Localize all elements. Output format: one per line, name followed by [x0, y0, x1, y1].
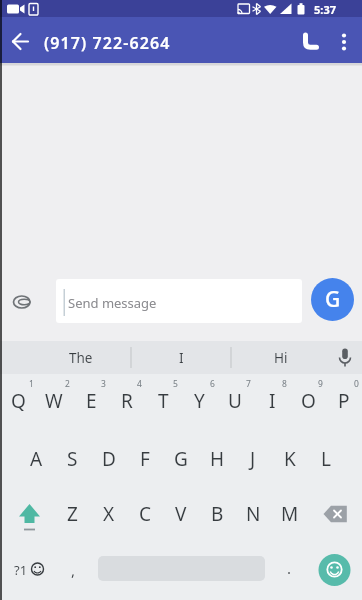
staticText: K	[284, 446, 296, 472]
staticText: 0	[354, 378, 359, 390]
staticText: B	[211, 501, 224, 527]
button[interactable]	[56, 279, 302, 323]
staticText: X	[103, 501, 115, 527]
staticText: E	[86, 388, 97, 414]
staticText: I	[179, 349, 184, 367]
staticText: 1	[29, 378, 34, 390]
button[interactable]: B	[199, 494, 235, 534]
staticText: Hi	[274, 349, 288, 367]
staticText: J	[250, 446, 256, 472]
button[interactable]: S	[54, 439, 90, 479]
staticText: Q	[11, 388, 26, 414]
button[interactable]: W	[36, 381, 72, 421]
staticText: 9	[318, 378, 323, 390]
button[interactable]: P	[326, 381, 362, 421]
button[interactable]: I	[141, 343, 221, 372]
button[interactable]: U	[217, 381, 253, 421]
button[interactable]: .	[271, 548, 307, 588]
staticText: Z	[67, 501, 78, 527]
button[interactable]: Q	[0, 381, 36, 421]
button[interactable]	[315, 496, 355, 534]
button[interactable]: R	[109, 381, 145, 421]
button[interactable]: H	[199, 439, 235, 479]
button[interactable]	[331, 343, 359, 372]
staticText: V	[175, 501, 187, 527]
staticText: D	[102, 446, 116, 472]
staticText: S	[67, 446, 78, 472]
button[interactable]: Hi	[241, 343, 321, 372]
staticText: I	[269, 388, 276, 414]
button[interactable]	[330, 28, 358, 56]
button[interactable]: C	[127, 494, 163, 534]
staticText: 2	[65, 378, 70, 390]
staticText: 7	[246, 378, 251, 390]
staticText: H	[210, 446, 225, 472]
staticText: ,	[71, 560, 76, 580]
staticText: Y	[194, 388, 205, 414]
button[interactable]	[317, 552, 353, 588]
staticText: C	[139, 501, 152, 527]
button[interactable]: V	[163, 494, 199, 534]
button[interactable]: ,	[55, 550, 91, 590]
button[interactable]: M	[272, 494, 308, 534]
staticText: Send message	[68, 294, 157, 312]
button[interactable]	[6, 28, 34, 56]
button[interactable]: I	[254, 381, 290, 421]
staticText: 6	[210, 378, 215, 390]
button[interactable]: T	[145, 381, 181, 421]
staticText: (917) 722-6264	[44, 32, 171, 54]
button[interactable]: X	[91, 494, 127, 534]
staticText: 5:37	[314, 2, 336, 17]
button[interactable]: Y	[181, 381, 217, 421]
staticText: 5	[173, 378, 178, 390]
button[interactable]: The	[41, 343, 121, 372]
staticText: W	[45, 388, 63, 414]
staticText: G	[325, 285, 341, 314]
button[interactable]	[10, 496, 50, 534]
staticText: L	[321, 446, 331, 472]
staticText: R	[121, 388, 133, 414]
staticText: P	[338, 388, 350, 414]
button[interactable]: E	[73, 381, 109, 421]
staticText: N	[246, 501, 261, 527]
button[interactable]	[8, 552, 50, 590]
staticText: 4	[137, 378, 142, 390]
button[interactable]: G	[311, 278, 354, 321]
button[interactable]: J	[235, 439, 271, 479]
button[interactable]: O	[290, 381, 326, 421]
staticText: M	[281, 501, 299, 527]
staticText: The	[69, 349, 93, 367]
staticText: F	[140, 446, 150, 472]
staticText: .	[287, 558, 292, 578]
staticText: U	[228, 388, 242, 414]
button[interactable]: N	[235, 494, 271, 534]
staticText: A	[30, 446, 43, 472]
staticText: G	[174, 446, 188, 472]
staticText: T	[158, 388, 169, 414]
button[interactable]: F	[127, 439, 163, 479]
staticText: O	[301, 388, 316, 414]
button[interactable]: L	[308, 439, 344, 479]
button[interactable]: D	[91, 439, 127, 479]
staticText: ?1	[14, 561, 28, 579]
button[interactable]: K	[272, 439, 308, 479]
button[interactable]	[294, 28, 322, 56]
button[interactable]: Z	[54, 494, 90, 534]
staticText: 3	[101, 378, 106, 390]
button[interactable]: A	[18, 439, 54, 479]
staticText: 8	[282, 378, 287, 390]
button[interactable]: G	[163, 439, 199, 479]
